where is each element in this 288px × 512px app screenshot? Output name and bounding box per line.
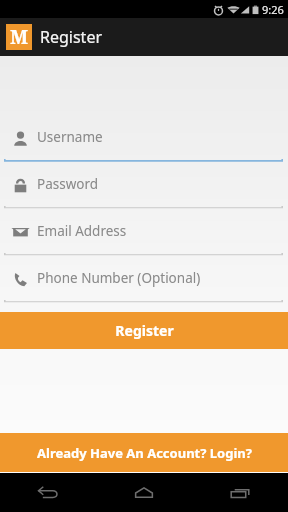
- staticText: Username: [37, 128, 103, 146]
- button[interactable]: Home: [96, 473, 192, 512]
- button[interactable]: Back: [0, 473, 96, 512]
- button[interactable]: Recent apps: [192, 473, 288, 512]
- staticText: M: [10, 24, 29, 50]
- button[interactable]: Password: [0, 162, 288, 209]
- staticText: Register: [115, 321, 174, 340]
- staticText: Already Have An Account? Login?: [37, 444, 252, 462]
- button[interactable]: Already Have An Account? Login?: [0, 433, 288, 472]
- staticText: Phone Number (Optional): [37, 269, 201, 287]
- staticText: Password: [37, 175, 99, 193]
- staticText: Register: [40, 26, 103, 48]
- staticText: 9:26: [262, 2, 284, 17]
- button[interactable]: Username: [0, 115, 288, 162]
- button[interactable]: Phone Number (Optional): [0, 256, 288, 303]
- staticText: Email Address: [37, 222, 127, 240]
- button[interactable]: Email Address: [0, 209, 288, 256]
- button[interactable]: Register: [0, 312, 288, 349]
